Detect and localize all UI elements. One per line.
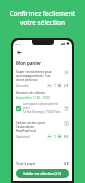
staticText: Horaires de collecte (16, 91, 46, 95)
staticText: 1 (54, 84, 56, 88)
button[interactable]: Information (64, 121, 69, 126)
staticText: Aujourd'hui 17:00 - 19:00 (16, 96, 50, 100)
staticText: Optionnel (16, 135, 47, 139)
button[interactable]: Decrease (47, 134, 52, 139)
button[interactable]: J'adore un don pour l'association HopHop… (16, 121, 69, 139)
staticText: 1 (54, 135, 56, 139)
button[interactable]: Decrease (47, 83, 52, 88)
staticText: Mon panier (16, 60, 42, 66)
staticText: Confirmez facilement votre sélection (4, 9, 81, 27)
staticText: 09:41 (15, 42, 22, 45)
staticText: Le magasin collecte général point 14 Rue… (23, 102, 64, 114)
button[interactable]: Valider ma sélection (2 €) (16, 169, 69, 178)
staticText: Valider ma sélection (2 €) (23, 172, 62, 176)
staticText: Quantité (16, 84, 47, 88)
button[interactable]: Increase (57, 83, 62, 88)
button[interactable]: Super recrutement pour accompagnement : … (16, 70, 69, 88)
other: Back (17, 50, 22, 55)
button[interactable]: Delete (64, 106, 69, 111)
button[interactable]: Remove item (64, 70, 69, 75)
button[interactable]: Back (16, 49, 23, 56)
button[interactable]: Le magasin collecte général point 14 Rue… (16, 102, 69, 114)
staticText: 0 € (64, 135, 69, 139)
staticText: 2 € (64, 84, 69, 88)
staticText: 2 € (64, 161, 69, 166)
staticText: J'adore un don pour l'association HopHop… (16, 121, 62, 133)
staticText: Super recrutement pour accompagnement : … (16, 70, 62, 82)
button[interactable]: Increase (57, 134, 62, 139)
staticText: Total à payer (16, 162, 64, 166)
